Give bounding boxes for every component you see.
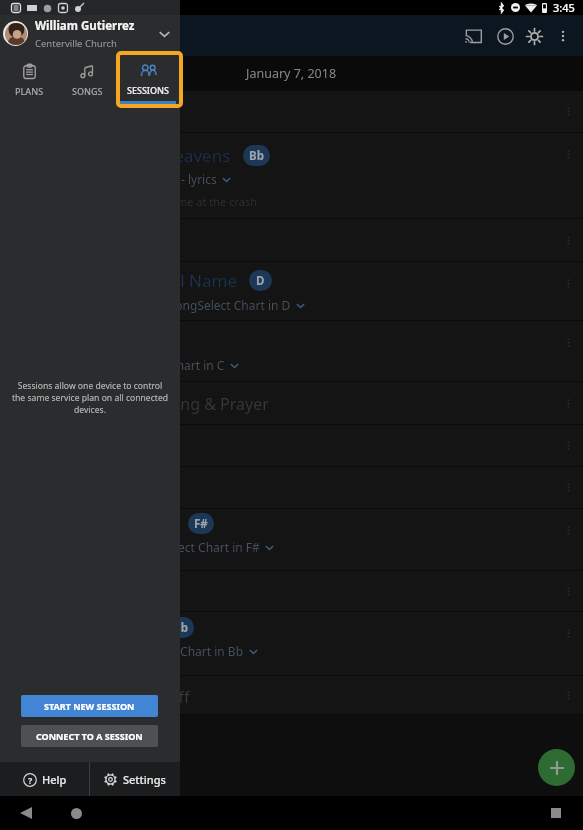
staticText: Acoustic Guide - SongSelect Chart in D [75, 297, 291, 313]
staticText: CONNECT TO A SESSION [36, 730, 143, 742]
button[interactable]: William Gutierrez [0, 15, 180, 51]
staticText: PLANS [15, 85, 44, 97]
staticText: F# [194, 516, 208, 532]
button[interactable]: SESSIONS [120, 55, 176, 104]
staticText: D [256, 273, 265, 289]
button[interactable]: Row menu [0, 425, 583, 466]
staticText: SONGS [72, 85, 103, 97]
staticText: Bb [249, 148, 264, 164]
button[interactable]: Brightness [520, 17, 549, 55]
button[interactable]: Row menu [0, 219, 583, 261]
staticText: ? [28, 774, 33, 786]
staticText: SESSIONS [127, 84, 170, 96]
button[interactable]: Row menu [0, 91, 583, 132]
staticText: Settings [123, 772, 166, 787]
button[interactable]: Cast [457, 17, 490, 55]
staticText: William Gutierrez [35, 18, 135, 34]
staticText: January 7, 2018 [246, 65, 337, 82]
staticText: Offering & Stuff [71, 686, 190, 708]
staticText: Praise the Heavens [78, 144, 231, 167]
button[interactable]: Row menu [0, 467, 583, 508]
button[interactable]: PLANS [0, 51, 58, 109]
staticText: What A Beautiful Name [51, 269, 237, 292]
button[interactable]: F# [0, 509, 583, 570]
button[interactable]: Recents [545, 802, 567, 824]
button[interactable]: Row menu [0, 571, 583, 611]
button[interactable]: ? [0, 762, 89, 796]
staticText: You are so welcome at the crash [91, 194, 257, 209]
button[interactable]: Offering & Prayer [0, 382, 583, 424]
button[interactable]: SongSelect Chart in C [0, 321, 583, 381]
button[interactable]: More options [549, 17, 577, 55]
button[interactable]: Play [490, 17, 520, 55]
button[interactable]: Bb [0, 612, 583, 675]
button[interactable]: Home [65, 802, 87, 824]
button[interactable]: Praise the Heavens [0, 133, 583, 218]
staticText: START NEW SESSION [44, 700, 135, 712]
button[interactable]: SONGS [58, 51, 116, 109]
staticText: Centerville Church [35, 37, 117, 50]
staticText: 3:45 [553, 0, 575, 15]
button[interactable]: Add [538, 749, 575, 786]
staticText: SongSelect Chart in Bb [115, 643, 244, 659]
button[interactable]: What A Beautiful Name [0, 262, 583, 320]
staticText: Chords and Lyrics - lyrics [78, 171, 217, 187]
staticText: SongSelect Chart in C [104, 357, 225, 373]
staticText: SongSelect Chart in F# [133, 539, 260, 555]
staticText: Sessions allow one device to control the… [10, 380, 170, 416]
staticText: Offering & Prayer [137, 393, 269, 415]
button[interactable]: Settings [90, 762, 180, 796]
button[interactable]: Offering & Stuff [0, 676, 583, 714]
button[interactable]: START NEW SESSION [21, 695, 158, 717]
button[interactable]: CONNECT TO A SESSION [21, 725, 158, 747]
staticText: Help [42, 772, 67, 787]
staticText: Bb [173, 620, 188, 636]
button[interactable]: Back [15, 802, 37, 824]
